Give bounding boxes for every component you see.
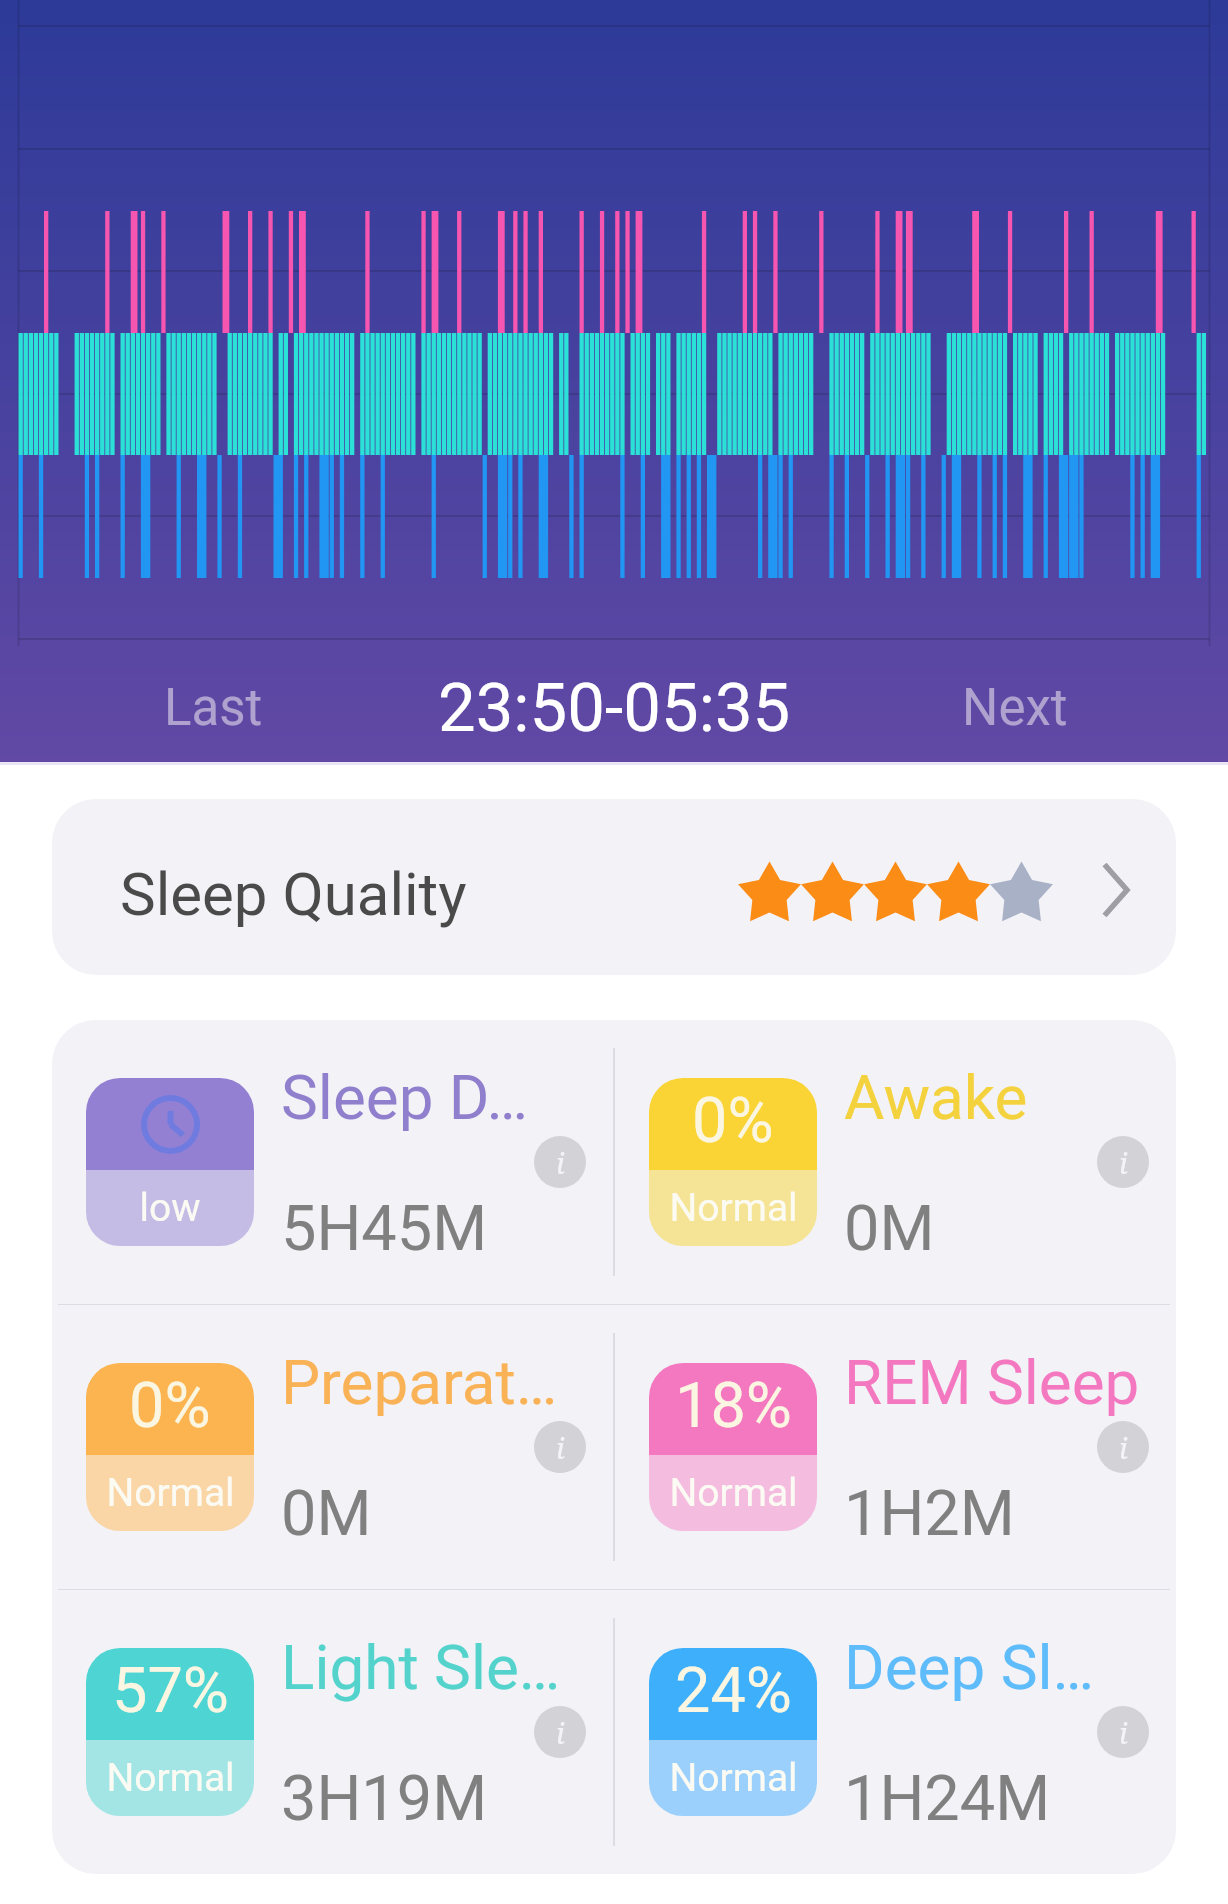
- button[interactable]: Sleep Quality: [52, 799, 1176, 975]
- staticText: Awake: [844, 1061, 1028, 1134]
- staticText: REM Sleep: [844, 1346, 1140, 1419]
- staticText: 0M: [844, 1192, 935, 1266]
- staticText: 0%: [692, 1084, 774, 1158]
- staticText: Sleep Quality: [120, 859, 467, 929]
- staticText: 5H45M: [281, 1192, 488, 1266]
- staticText: Normal: [669, 1755, 798, 1801]
- staticText: 57%: [112, 1654, 229, 1728]
- button[interactable]: low: [52, 1020, 613, 1304]
- staticText: i: [556, 1713, 565, 1752]
- button[interactable]: Info about Sleep D…: [534, 1136, 586, 1188]
- staticText: Last: [164, 678, 263, 738]
- button[interactable]: Info about Preparat…: [534, 1421, 586, 1473]
- staticText: 23:50-05:35: [438, 669, 791, 748]
- staticText: Preparat…: [281, 1346, 558, 1419]
- staticText: Light Sle…: [281, 1631, 561, 1704]
- staticText: Normal: [106, 1755, 235, 1801]
- staticText: Next: [962, 678, 1068, 738]
- staticText: 0%: [129, 1369, 211, 1443]
- staticText: 1H24M: [844, 1762, 1051, 1836]
- staticText: Sleep D…: [281, 1061, 528, 1134]
- button[interactable]: Next: [808, 658, 1228, 758]
- staticText: 3H19M: [281, 1762, 488, 1836]
- staticText: Normal: [669, 1185, 798, 1231]
- button[interactable]: Info about Deep Sl…: [1097, 1706, 1149, 1758]
- staticText: Deep Sl…: [844, 1631, 1094, 1704]
- staticText: i: [556, 1143, 565, 1182]
- staticText: low: [139, 1185, 201, 1231]
- staticText: i: [1119, 1143, 1128, 1182]
- staticText: 24%: [675, 1654, 792, 1728]
- button[interactable]: Last: [0, 658, 420, 758]
- button[interactable]: 24%: [615, 1590, 1176, 1874]
- button[interactable]: 18%: [615, 1305, 1176, 1589]
- staticText: Normal: [669, 1470, 798, 1516]
- staticText: i: [1119, 1713, 1128, 1752]
- button[interactable]: Info about Light Sle…: [534, 1706, 586, 1758]
- staticText: 0M: [281, 1477, 372, 1551]
- staticText: 18%: [675, 1369, 792, 1443]
- staticText: i: [556, 1428, 565, 1467]
- staticText: i: [1119, 1428, 1128, 1467]
- button[interactable]: 57%: [52, 1590, 613, 1874]
- staticText: Normal: [106, 1470, 235, 1516]
- button[interactable]: 0%: [615, 1020, 1176, 1304]
- button[interactable]: Info about Awake: [1097, 1136, 1149, 1188]
- button[interactable]: 0%: [52, 1305, 613, 1589]
- staticText: 1H2M: [844, 1477, 1015, 1551]
- button[interactable]: Info about REM Sleep: [1097, 1421, 1149, 1473]
